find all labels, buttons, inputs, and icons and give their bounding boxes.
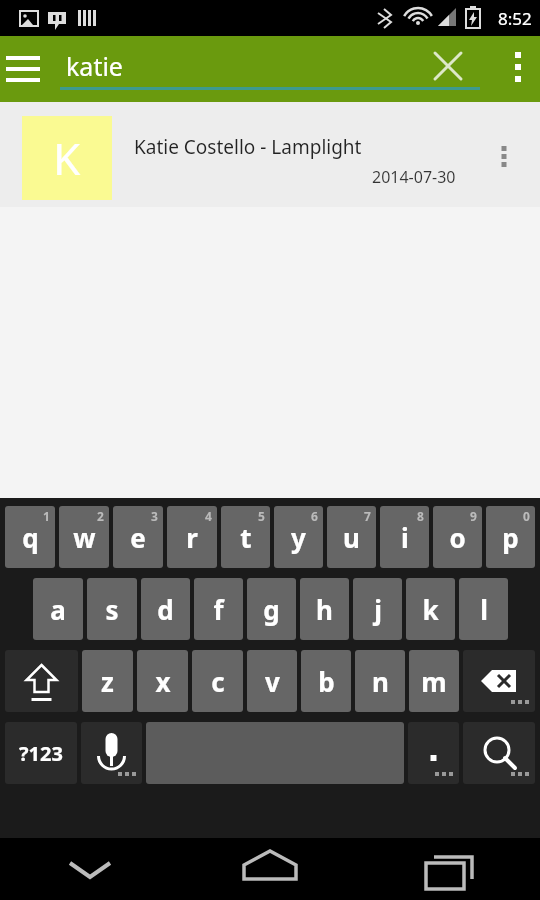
button[interactable]: j bbox=[353, 578, 402, 640]
button[interactable]: o bbox=[433, 506, 482, 568]
button[interactable]: K bbox=[0, 102, 540, 207]
staticText: ?123 bbox=[19, 740, 63, 767]
staticText: e bbox=[130, 520, 146, 555]
button[interactable]: m bbox=[409, 650, 459, 712]
button[interactable]: e bbox=[113, 506, 163, 568]
staticText: k bbox=[422, 592, 439, 627]
staticText: 7 bbox=[364, 508, 371, 524]
staticText: 1 bbox=[43, 508, 50, 524]
button[interactable]: Item options bbox=[486, 132, 522, 168]
staticText: 8:52 bbox=[498, 7, 532, 30]
button[interactable]: d bbox=[141, 578, 190, 640]
button[interactable]: z bbox=[82, 650, 133, 712]
staticText: 2014-07-30 bbox=[372, 166, 456, 188]
button[interactable]: Backspace bbox=[463, 650, 535, 712]
button[interactable]: k bbox=[406, 578, 455, 640]
staticText: u bbox=[343, 520, 360, 555]
staticText: b bbox=[318, 664, 335, 699]
staticText: 0 bbox=[523, 508, 530, 524]
staticText: l bbox=[480, 592, 488, 627]
button[interactable]: x bbox=[137, 650, 188, 712]
staticText: K bbox=[53, 128, 81, 188]
staticText: i bbox=[401, 520, 409, 555]
staticText: 9 bbox=[470, 508, 477, 524]
staticText: 3 bbox=[151, 508, 158, 524]
button[interactable]: Home bbox=[180, 838, 360, 900]
staticText: r bbox=[186, 520, 198, 555]
button[interactable]: r bbox=[167, 506, 217, 568]
button[interactable]: Shift bbox=[5, 650, 78, 712]
staticText: j bbox=[374, 592, 382, 627]
button[interactable]: l bbox=[459, 578, 508, 640]
staticText: m bbox=[421, 664, 447, 699]
staticText: v bbox=[265, 664, 280, 699]
button[interactable]: q bbox=[5, 506, 55, 568]
button[interactable]: Search bbox=[463, 722, 535, 784]
button[interactable]: f bbox=[194, 578, 243, 640]
staticText: Katie Costello - Lamplight bbox=[134, 134, 362, 160]
button[interactable]: Voice input bbox=[81, 722, 142, 784]
staticText: a bbox=[50, 592, 66, 627]
staticText: d bbox=[157, 592, 174, 627]
button[interactable]: g bbox=[247, 578, 296, 640]
staticText: 8 bbox=[417, 508, 424, 524]
button[interactable]: w bbox=[59, 506, 109, 568]
staticText: 2 bbox=[97, 508, 104, 524]
staticText: o bbox=[449, 520, 466, 555]
staticText: h bbox=[316, 592, 333, 627]
staticText: katie bbox=[66, 49, 123, 83]
staticText: c bbox=[211, 664, 225, 699]
button[interactable]: y bbox=[274, 506, 323, 568]
staticText: 6 bbox=[311, 508, 318, 524]
button[interactable]: v bbox=[247, 650, 297, 712]
button[interactable]: u bbox=[327, 506, 376, 568]
button[interactable]: Menu bbox=[0, 46, 46, 92]
staticText: z bbox=[101, 664, 114, 699]
staticText: p bbox=[502, 520, 519, 555]
staticText: w bbox=[73, 520, 96, 555]
button[interactable]: a bbox=[33, 578, 83, 640]
button[interactable]: Hide keyboard bbox=[0, 838, 180, 900]
button[interactable]: p bbox=[486, 506, 535, 568]
staticText: t bbox=[240, 520, 252, 555]
button[interactable]: Period bbox=[408, 722, 459, 784]
staticText: 4 bbox=[205, 508, 212, 524]
staticText: f bbox=[213, 592, 224, 627]
staticText: 5 bbox=[258, 508, 265, 524]
button[interactable]: h bbox=[300, 578, 349, 640]
button[interactable]: More options bbox=[496, 47, 540, 91]
staticText: n bbox=[372, 664, 389, 699]
staticText: q bbox=[22, 520, 39, 555]
button[interactable]: n bbox=[355, 650, 405, 712]
staticText: x bbox=[155, 664, 171, 699]
button[interactable]: Recent apps bbox=[360, 838, 540, 900]
button[interactable]: s bbox=[87, 578, 137, 640]
button[interactable]: Clear bbox=[424, 45, 472, 93]
button[interactable]: ?123 bbox=[5, 722, 77, 784]
button[interactable]: t bbox=[221, 506, 270, 568]
staticText: g bbox=[263, 592, 280, 627]
staticText: s bbox=[105, 592, 119, 627]
staticText: y bbox=[291, 520, 306, 555]
button[interactable]: b bbox=[301, 650, 351, 712]
button[interactable]: i bbox=[380, 506, 429, 568]
button[interactable]: c bbox=[192, 650, 243, 712]
